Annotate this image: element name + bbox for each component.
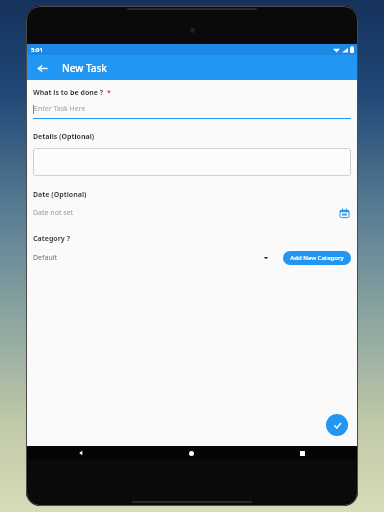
button[interactable]: Pick date [337, 206, 351, 220]
button[interactable]: Add New Category [283, 251, 351, 265]
staticText: Date (Optional) [33, 190, 87, 200]
staticText: Details (Optional) [33, 132, 95, 142]
button[interactable]: Recent apps [247, 446, 358, 460]
staticText: Category ? [33, 234, 70, 244]
button[interactable] [33, 148, 351, 176]
staticText: 5:01 [31, 46, 43, 54]
button[interactable]: Date not set [33, 208, 337, 218]
staticText: What is to be done ? [33, 88, 104, 98]
staticText: Add New Category [290, 254, 344, 262]
staticText: New Task [62, 61, 107, 75]
button[interactable]: Default [33, 253, 269, 263]
staticText: Default [33, 253, 263, 263]
button[interactable]: Back [32, 58, 52, 78]
button[interactable]: Save task [326, 414, 348, 436]
button[interactable]: Back [26, 446, 136, 460]
button[interactable]: Enter Task Here [33, 104, 351, 119]
staticText: Enter Task Here [34, 104, 86, 114]
staticText: * [107, 88, 111, 98]
button[interactable]: Home [136, 446, 247, 460]
